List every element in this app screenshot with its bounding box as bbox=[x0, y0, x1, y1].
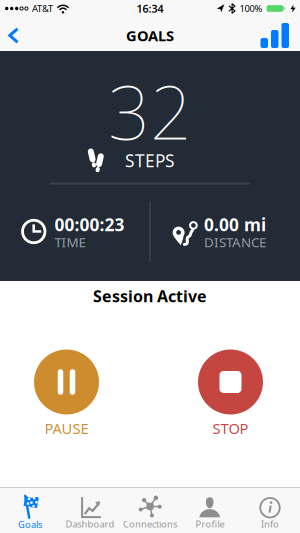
staticText: 100% bbox=[240, 2, 263, 15]
button[interactable]: Back bbox=[0, 20, 19, 51]
staticText: Connections bbox=[123, 518, 177, 530]
staticText: STOP bbox=[212, 418, 248, 438]
staticText: Session Active bbox=[93, 285, 207, 307]
staticText: 0.00 mi bbox=[204, 213, 266, 236]
staticText: STEPS bbox=[125, 149, 175, 172]
button[interactable]: STOP bbox=[198, 349, 263, 438]
button[interactable]: PAUSE bbox=[34, 349, 99, 438]
button[interactable]: Connections bbox=[120, 488, 180, 533]
staticText: 32 bbox=[108, 62, 192, 160]
staticText: 16:34 bbox=[136, 1, 163, 16]
staticText: 00:00:23 bbox=[54, 213, 124, 236]
button[interactable]: Info bbox=[240, 488, 300, 533]
staticText: Profile bbox=[195, 518, 224, 530]
button[interactable]: Profile bbox=[180, 488, 240, 533]
staticText: GOALS bbox=[126, 26, 174, 45]
staticText: Goals bbox=[18, 518, 42, 531]
staticText: TIME bbox=[54, 233, 85, 251]
button[interactable]: Goals bbox=[0, 488, 60, 533]
staticText: AT&T bbox=[32, 2, 53, 15]
button[interactable]: Statistics bbox=[260, 20, 300, 51]
staticText: PAUSE bbox=[44, 418, 88, 438]
staticText: Dashboard bbox=[65, 518, 114, 530]
button[interactable]: Dashboard bbox=[60, 488, 120, 533]
staticText: Info bbox=[261, 518, 279, 530]
staticText: DISTANCE bbox=[204, 233, 266, 251]
